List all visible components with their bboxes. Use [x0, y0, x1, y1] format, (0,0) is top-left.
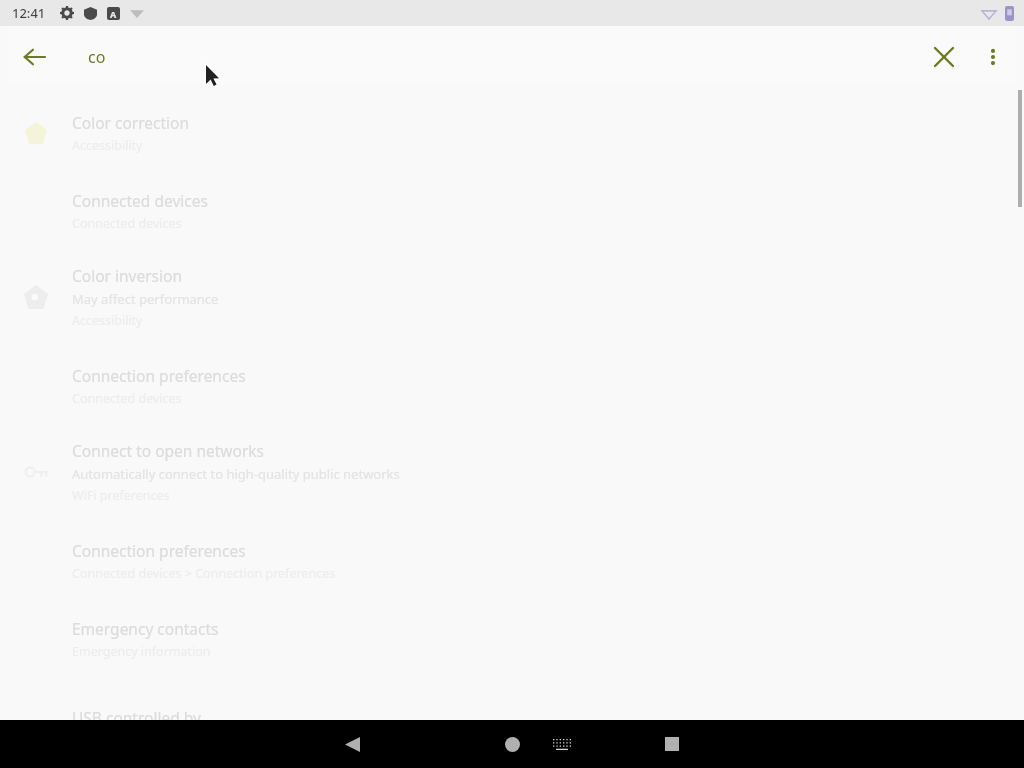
staticText: Connection preferences: [72, 540, 246, 561]
staticText: Connected devices: [72, 215, 182, 232]
staticText: Accessibility: [72, 137, 143, 154]
staticText: Connection preferences: [72, 365, 246, 386]
staticText: co: [88, 46, 106, 68]
staticText: Connected devices: [72, 190, 208, 211]
staticText: Color correction: [72, 112, 190, 133]
button[interactable]: Connected devices: [0, 183, 1024, 239]
staticText: USB controlled by: [72, 707, 201, 728]
button[interactable]: Color correction: [0, 105, 1024, 161]
staticText: 12:41: [12, 4, 46, 22]
button[interactable]: USB controlled by: [0, 689, 1024, 745]
button[interactable]: Home: [490, 722, 534, 766]
staticText: Accessibility: [72, 312, 143, 329]
staticText: Automatically connect to high-quality pu…: [72, 465, 400, 483]
staticText: A: [110, 8, 117, 20]
staticText: May affect performance: [72, 290, 219, 308]
staticText: Emergency contacts: [72, 618, 219, 639]
button[interactable]: Back: [8, 31, 60, 83]
staticText: WiFi preferences: [72, 487, 170, 504]
button[interactable]: Connection preferences: [0, 533, 1024, 589]
staticText: Connected devices: [72, 390, 182, 407]
staticText: Connected devices > Connection preferenc…: [72, 565, 336, 582]
button[interactable]: More options: [970, 34, 1016, 80]
staticText: Emergency information: [72, 643, 211, 660]
button[interactable]: Connect to open networks: [0, 436, 1024, 508]
staticText: Color inversion: [72, 265, 182, 286]
button[interactable]: Keyboard: [542, 724, 582, 764]
button[interactable]: Back: [330, 722, 374, 766]
button[interactable]: Clear search: [918, 31, 970, 83]
button[interactable]: Recent apps: [650, 722, 694, 766]
staticText: Connect to open networks: [72, 440, 264, 461]
